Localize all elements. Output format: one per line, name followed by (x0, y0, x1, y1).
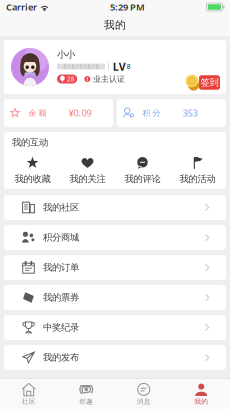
staticText: 8 (127, 62, 131, 71)
button[interactable]: 我的评论 (115, 152, 170, 188)
staticText: 小小 (57, 49, 75, 60)
staticText: 积分商城 (43, 232, 79, 243)
staticText: 我的票券 (43, 292, 79, 303)
button[interactable]: 积分商城 (0, 225, 230, 250)
staticText: 353 (182, 107, 197, 119)
button[interactable]: 我的社区 (0, 195, 230, 220)
button[interactable]: 我的收藏 (5, 152, 60, 188)
staticText: ¥0.09 (68, 107, 91, 119)
staticText: Carrier (6, 1, 37, 13)
staticText: 社区 (22, 397, 36, 406)
staticText: 我的收藏 (14, 173, 50, 185)
button[interactable]: 我的订单 (0, 255, 230, 280)
staticText: 我的关注 (69, 173, 105, 185)
button[interactable]: 积 分 (117, 99, 226, 127)
staticText: 我的发布 (43, 352, 79, 363)
button[interactable]: 签到 (184, 74, 220, 91)
button[interactable]: 社区 (0, 379, 57, 409)
button[interactable]: 邻趣 (57, 379, 115, 409)
staticText: 我的评论 (124, 173, 160, 185)
staticText: 消息 (137, 397, 151, 406)
staticText: 中奖纪录 (43, 322, 79, 333)
staticText: 余 额 (28, 108, 46, 118)
staticText: 我的社区 (43, 202, 79, 213)
staticText: 5:29 PM (110, 1, 145, 13)
staticText: 积 分 (142, 108, 160, 118)
button[interactable]: 余 额 (4, 99, 113, 127)
button[interactable]: 我的 (172, 379, 230, 409)
staticText: 我的 (104, 18, 126, 31)
button[interactable]: 消息 (115, 379, 172, 409)
button[interactable]: 中奖纪录 (0, 315, 230, 340)
staticText: 业主认证 (93, 74, 125, 84)
staticText: LV (113, 59, 126, 74)
staticText: 邻趣 (79, 397, 93, 406)
button[interactable]: Profile photo (11, 48, 49, 86)
staticText: 我的互动 (12, 137, 48, 148)
staticText: 我的活动 (179, 173, 215, 185)
button[interactable]: 我的发布 (0, 345, 230, 370)
button[interactable]: 我的关注 (60, 152, 115, 188)
staticText: 我的订单 (43, 262, 79, 273)
button[interactable]: 我的活动 (170, 152, 225, 188)
button[interactable]: 我的票券 (0, 285, 230, 310)
staticText: 签到 (200, 77, 218, 88)
staticText: 我的 (194, 397, 208, 406)
staticText: 28 (67, 75, 75, 83)
